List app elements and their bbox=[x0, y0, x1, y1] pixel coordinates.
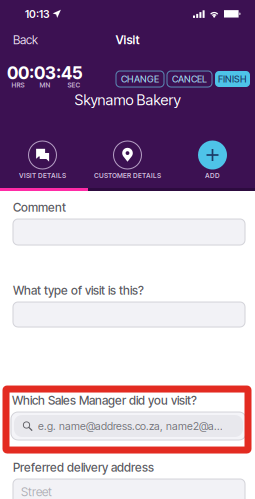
staticText: Visit bbox=[115, 33, 139, 47]
button[interactable] bbox=[13, 219, 245, 245]
button[interactable]: FINISH bbox=[215, 71, 250, 87]
button[interactable]: Street bbox=[13, 479, 245, 499]
staticText: Skynamo Bakery bbox=[74, 91, 180, 109]
button[interactable]: ADD bbox=[170, 140, 255, 180]
staticText: Back bbox=[13, 33, 38, 47]
staticText: e.g. name@address.co.za, name2@a... bbox=[38, 419, 223, 432]
staticText: CANCEL bbox=[172, 73, 207, 85]
button[interactable]: Back bbox=[9, 28, 42, 52]
button[interactable]: e.g. name@address.co.za, name2@a... bbox=[6, 412, 246, 440]
button[interactable]: CHANGE bbox=[116, 71, 164, 87]
staticText: VISIT DETAILS bbox=[19, 171, 66, 180]
staticText: What type of visit is this? bbox=[13, 283, 144, 298]
button[interactable]: CANCEL bbox=[167, 71, 212, 87]
staticText: 10:13 bbox=[25, 7, 50, 20]
staticText: CUSTOMER DETAILS bbox=[94, 171, 161, 180]
staticText: HRS bbox=[11, 81, 24, 89]
staticText: 00:03:45 bbox=[7, 62, 83, 83]
staticText: MN bbox=[39, 81, 50, 89]
button[interactable]: CUSTOMER DETAILS bbox=[85, 140, 170, 180]
staticText: CHANGE bbox=[121, 73, 159, 85]
button[interactable] bbox=[13, 302, 245, 327]
staticText: Preferred delivery address bbox=[13, 460, 154, 475]
staticText: Street bbox=[21, 485, 52, 499]
staticText: FINISH bbox=[218, 73, 247, 85]
button[interactable]: VISIT DETAILS bbox=[0, 140, 85, 180]
staticText: ADD bbox=[205, 171, 220, 180]
staticText: SEC bbox=[67, 81, 80, 89]
staticText: Which Sales Manager did you visit? bbox=[12, 393, 197, 408]
staticText: Comment bbox=[13, 200, 66, 215]
